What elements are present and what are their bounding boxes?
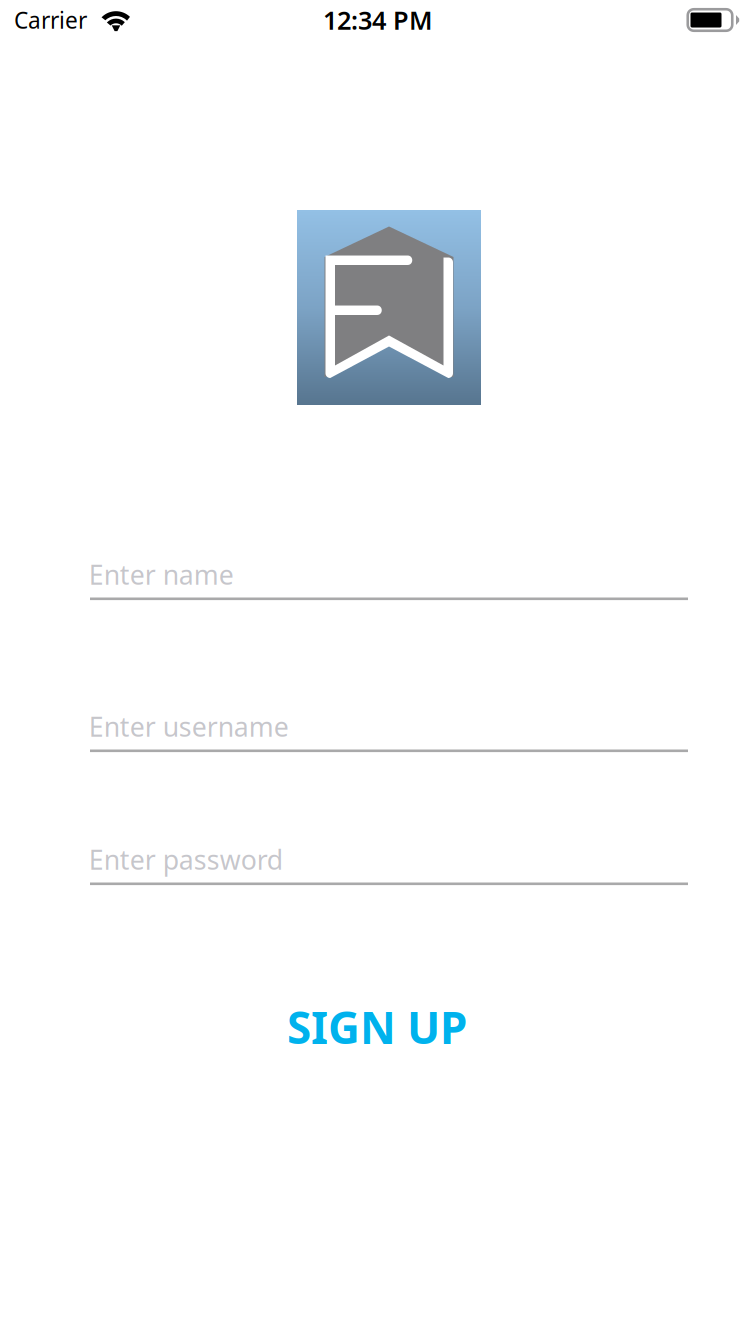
- button[interactable]: Enter password: [90, 843, 688, 885]
- button[interactable]: Enter username: [90, 710, 688, 752]
- staticText: Carrier: [14, 5, 87, 35]
- staticText: Enter name: [89, 557, 234, 592]
- staticText: SIGN UP: [287, 998, 467, 1056]
- button[interactable]: SIGN UP: [227, 999, 527, 1055]
- button[interactable]: Enter name: [90, 558, 688, 600]
- staticText: Enter password: [89, 842, 283, 877]
- staticText: 12:34 PM: [323, 3, 433, 37]
- staticText: Enter username: [89, 709, 289, 744]
